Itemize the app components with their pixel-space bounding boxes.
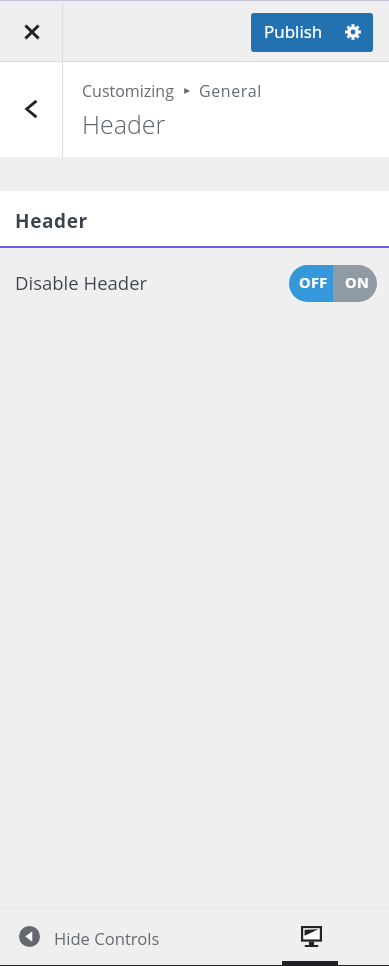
button[interactable]: Preview xyxy=(284,908,338,966)
button[interactable]: Publish xyxy=(251,13,373,52)
button[interactable]: Hide Controls xyxy=(0,908,200,966)
staticText: Header xyxy=(15,208,88,234)
staticText: Hide Controls xyxy=(54,927,160,950)
staticText: OFF xyxy=(299,273,328,293)
button[interactable]: Disable Header xyxy=(0,264,389,318)
button[interactable]: Back xyxy=(0,62,62,157)
staticText: Publish xyxy=(264,20,323,43)
button[interactable]: Close xyxy=(0,0,62,60)
staticText: Customizing xyxy=(82,80,174,102)
staticText: Header xyxy=(82,107,166,141)
staticText: General xyxy=(199,80,262,102)
staticText: Disable Header xyxy=(15,270,148,295)
staticText: ON xyxy=(345,273,370,293)
